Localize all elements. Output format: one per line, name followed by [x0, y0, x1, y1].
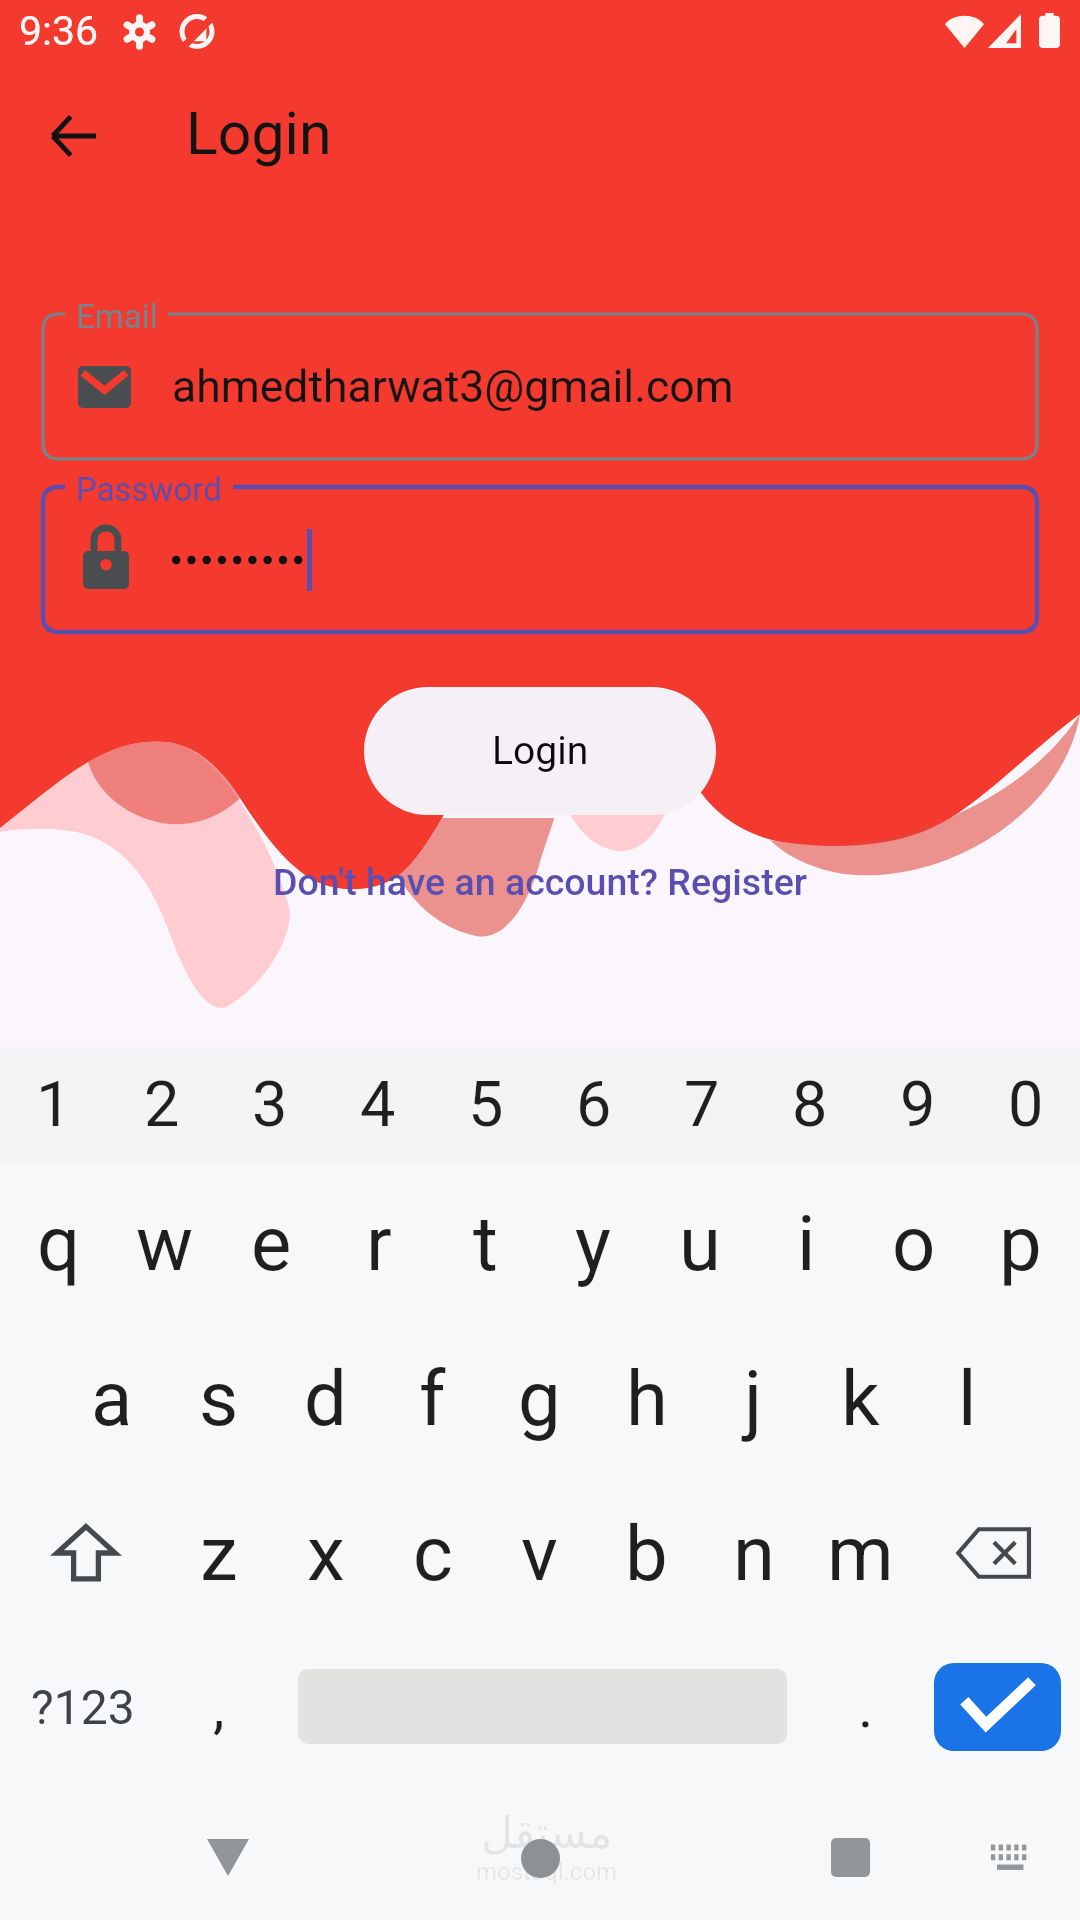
staticText: 5	[468, 1068, 504, 1142]
staticText: w	[136, 1199, 194, 1288]
staticText: Don't have an account? Register	[273, 860, 807, 904]
staticText: v	[521, 1509, 558, 1598]
button[interactable]: o	[860, 1163, 967, 1323]
button[interactable]: n	[700, 1474, 807, 1632]
staticText: l	[958, 1354, 977, 1443]
staticText: x	[307, 1509, 345, 1598]
button[interactable]: s	[165, 1323, 272, 1474]
staticText: i	[797, 1199, 816, 1288]
button[interactable]: w	[112, 1163, 218, 1323]
button[interactable]: ?123	[0, 1632, 165, 1781]
button[interactable]: 0	[972, 1047, 1080, 1163]
button[interactable]: z	[165, 1474, 272, 1632]
staticText: 1	[36, 1068, 72, 1142]
button[interactable]: 2	[108, 1047, 216, 1163]
staticText: d	[304, 1354, 347, 1443]
staticText: h	[626, 1354, 668, 1443]
staticText: o	[892, 1199, 936, 1288]
button[interactable]: r	[325, 1163, 432, 1323]
button[interactable]: Back	[183, 1787, 273, 1920]
button[interactable]: 6	[540, 1047, 648, 1163]
button[interactable]: x	[272, 1474, 379, 1632]
button[interactable]: Login	[364, 687, 716, 815]
button[interactable]: j	[700, 1323, 807, 1474]
button[interactable]: y	[539, 1163, 646, 1323]
staticText: t	[473, 1199, 498, 1288]
button[interactable]: d	[272, 1323, 379, 1474]
staticText: mostaql.com	[476, 1858, 618, 1886]
button[interactable]: Don't have an account? Register	[0, 858, 1080, 906]
staticText: q	[37, 1199, 81, 1288]
button[interactable]: Done	[934, 1663, 1061, 1751]
staticText: s	[199, 1354, 239, 1443]
staticText: Login	[492, 728, 589, 774]
button[interactable]: l	[914, 1323, 1021, 1474]
button[interactable]: 8	[756, 1047, 864, 1163]
staticText: 7	[684, 1068, 720, 1142]
staticText: ?123	[31, 1679, 135, 1735]
staticText: j	[744, 1354, 763, 1443]
button[interactable]: Recents	[805, 1787, 895, 1920]
button[interactable]: g	[486, 1323, 593, 1474]
staticText: Email	[76, 297, 158, 336]
button[interactable]: Back	[23, 86, 123, 186]
button[interactable]: c	[379, 1474, 486, 1632]
staticText: 3	[252, 1068, 288, 1142]
staticText: p	[999, 1199, 1042, 1288]
button[interactable]: i	[753, 1163, 860, 1323]
staticText: k	[841, 1354, 880, 1443]
button[interactable]: 5	[432, 1047, 540, 1163]
staticText: 9	[900, 1068, 936, 1142]
button[interactable]: t	[432, 1163, 539, 1323]
button[interactable]: Home	[495, 1788, 585, 1920]
button[interactable]: e	[218, 1163, 325, 1323]
staticText: 4	[360, 1068, 396, 1142]
button[interactable]: Backspace	[914, 1474, 1074, 1632]
staticText: g	[518, 1354, 561, 1443]
button[interactable]	[43, 487, 1037, 632]
button[interactable]: 3	[216, 1047, 324, 1163]
staticText: n	[733, 1509, 775, 1598]
staticText: u	[679, 1199, 721, 1288]
staticText: 6	[576, 1068, 612, 1142]
staticText: 9:36	[19, 7, 99, 55]
staticText: Password	[76, 470, 222, 509]
staticText: ,	[213, 1673, 225, 1741]
staticText: مستقل	[481, 1807, 613, 1858]
button[interactable]: f	[379, 1323, 486, 1474]
staticText: f	[419, 1354, 446, 1443]
button[interactable]: 9	[864, 1047, 972, 1163]
button[interactable]: 1	[0, 1047, 108, 1163]
button[interactable]: h	[593, 1323, 700, 1474]
staticText: b	[625, 1509, 668, 1598]
staticText: y	[575, 1199, 611, 1288]
button[interactable]: ahmedtharwat3@gmail.com	[43, 314, 1037, 459]
button[interactable]: Shift	[6, 1474, 165, 1632]
staticText: 2	[144, 1068, 180, 1142]
staticText: r	[366, 1199, 392, 1288]
staticText: ahmedtharwat3@gmail.com	[172, 361, 734, 413]
button[interactable]: 7	[648, 1047, 756, 1163]
staticText: m	[827, 1509, 894, 1598]
button[interactable]: m	[807, 1474, 914, 1632]
button[interactable]: v	[486, 1474, 593, 1632]
staticText: a	[91, 1354, 133, 1443]
button[interactable]: b	[593, 1474, 700, 1632]
staticText: c	[413, 1509, 453, 1598]
button[interactable]: .	[812, 1632, 920, 1781]
staticText: e	[251, 1199, 292, 1288]
staticText: .	[858, 1673, 874, 1741]
staticText: 8	[792, 1068, 828, 1142]
button[interactable]: Switch keyboard	[966, 1787, 1056, 1920]
button[interactable]: 4	[324, 1047, 432, 1163]
button[interactable]: p	[967, 1163, 1074, 1323]
button[interactable]: q	[6, 1163, 112, 1323]
staticText: z	[200, 1509, 238, 1598]
staticText: 0	[1008, 1068, 1044, 1142]
button[interactable]: u	[646, 1163, 753, 1323]
staticText: Login	[186, 99, 332, 168]
button[interactable]: ,	[165, 1632, 273, 1781]
button[interactable]: k	[807, 1323, 914, 1474]
button[interactable]: a	[59, 1323, 165, 1474]
